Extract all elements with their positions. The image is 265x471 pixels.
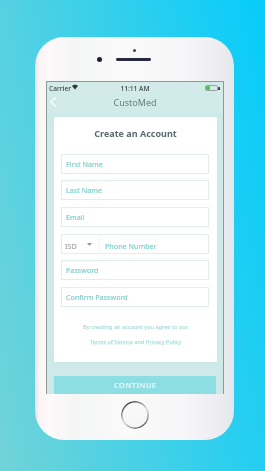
staticText: and [133, 338, 146, 346]
button[interactable]: Email [61, 207, 209, 227]
staticText: Phone Number [105, 241, 157, 251]
staticText: 11:11 AM [47, 84, 223, 93]
staticText: CONTINUE [114, 380, 157, 390]
staticText: First Name [66, 159, 103, 169]
staticText: Password [66, 265, 99, 275]
button[interactable]: ISD [61, 234, 103, 254]
staticText: CustoMed [47, 96, 223, 108]
button[interactable]: Last Name [61, 180, 209, 200]
staticText: Carrier [49, 84, 72, 93]
staticText: Last Name [66, 185, 102, 195]
button[interactable]: Back [44, 93, 62, 111]
button[interactable]: Privacy Policy [146, 338, 182, 346]
button[interactable]: Home [121, 401, 149, 429]
button[interactable]: CONTINUE [54, 376, 216, 394]
button[interactable]: Phone Number [99, 234, 208, 254]
button[interactable]: Confirm Password [61, 287, 209, 307]
staticText: Confirm Password [66, 292, 128, 302]
button[interactable]: Password [61, 260, 209, 280]
button[interactable]: Terms of Service [90, 338, 133, 346]
staticText: Create an Account [54, 127, 217, 139]
staticText: Email [66, 212, 85, 222]
staticText: Privacy Policy [146, 338, 182, 346]
staticText: By creating an account you agree to our [54, 323, 217, 331]
button[interactable]: First Name [61, 154, 209, 174]
staticText: Terms of Service [90, 338, 133, 346]
staticText: ISD [65, 241, 77, 251]
